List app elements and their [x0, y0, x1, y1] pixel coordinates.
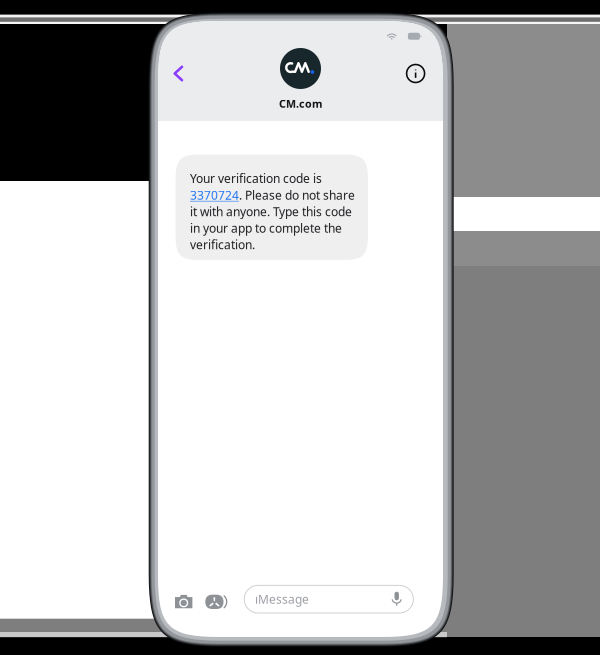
- staticText: CM.com: [279, 96, 322, 111]
- button[interactable]: Back: [163, 58, 193, 88]
- staticText: . Please do not share: [239, 187, 355, 203]
- staticText: verification.: [190, 237, 255, 252]
- staticText: iMessage: [255, 591, 309, 607]
- staticText: 3370724: [190, 187, 239, 203]
- button[interactable]: iMessage apps: [205, 594, 227, 609]
- button[interactable]: Details: [402, 59, 430, 87]
- staticText: in your app to complete the: [190, 220, 342, 236]
- staticText: it with anyone. Type this code: [190, 204, 352, 219]
- button[interactable]: Camera: [176, 593, 191, 610]
- button[interactable]: iMessage: [244, 585, 413, 613]
- staticText: Your verification code is: [190, 170, 322, 186]
